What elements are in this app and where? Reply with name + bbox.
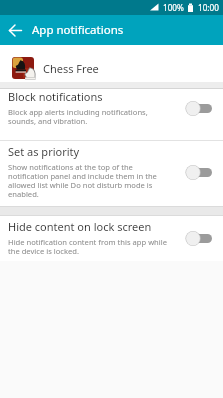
staticText: Set as priority [8, 144, 80, 159]
button[interactable] [0, 15, 30, 45]
staticText: Hide content on lock screen [8, 219, 152, 234]
staticText: 10:00 [198, 2, 219, 13]
button[interactable]: Set as priority [0, 141, 223, 206]
staticText: Block notifications [8, 89, 103, 104]
button[interactable]: Chess Free [0, 45, 223, 82]
button[interactable] [185, 100, 212, 117]
button[interactable] [185, 230, 212, 247]
staticText: App notifications [32, 22, 124, 38]
staticText: Hide notification content from this app … [8, 237, 168, 257]
staticText: Block app alerts including notifications… [8, 107, 148, 127]
staticText: 100% [163, 2, 184, 13]
button[interactable]: Hide content on lock screen [0, 216, 223, 261]
staticText: Chess Free [43, 61, 99, 76]
staticText: Show notifications at the top of the not… [8, 162, 157, 200]
button[interactable]: Block notifications [0, 89, 223, 140]
button[interactable] [185, 164, 212, 181]
